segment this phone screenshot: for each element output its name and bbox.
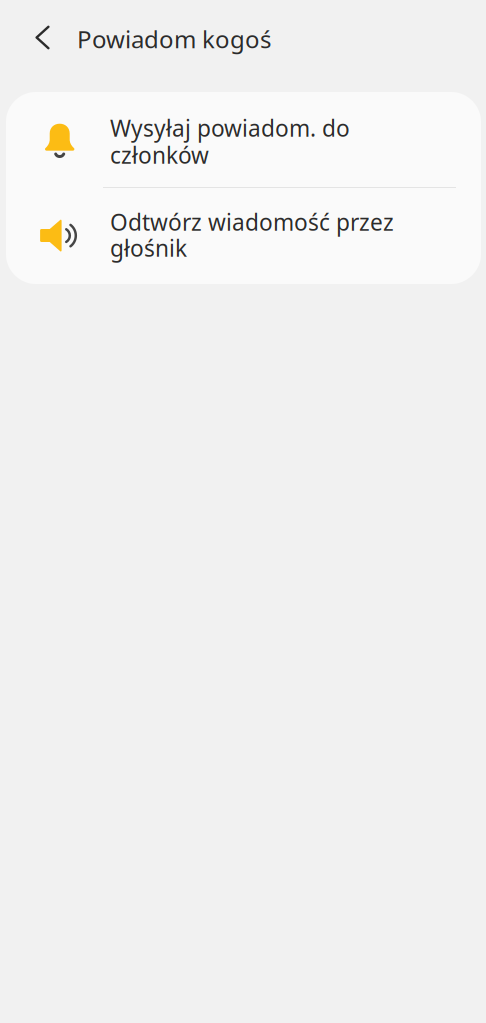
staticText: głośnik [110,233,187,263]
staticText: Powiadom kogoś [77,23,271,55]
staticText: Wysyłaj powiadom. do [110,113,350,143]
button[interactable]: Wysyłaj powiadom. do [6,92,481,187]
staticText: Odtwórz wiadomość przez [110,207,394,237]
button[interactable]: Odtwórz wiadomość przez [6,187,481,284]
staticText: członków [110,140,209,170]
button[interactable]: Back [19,14,65,60]
